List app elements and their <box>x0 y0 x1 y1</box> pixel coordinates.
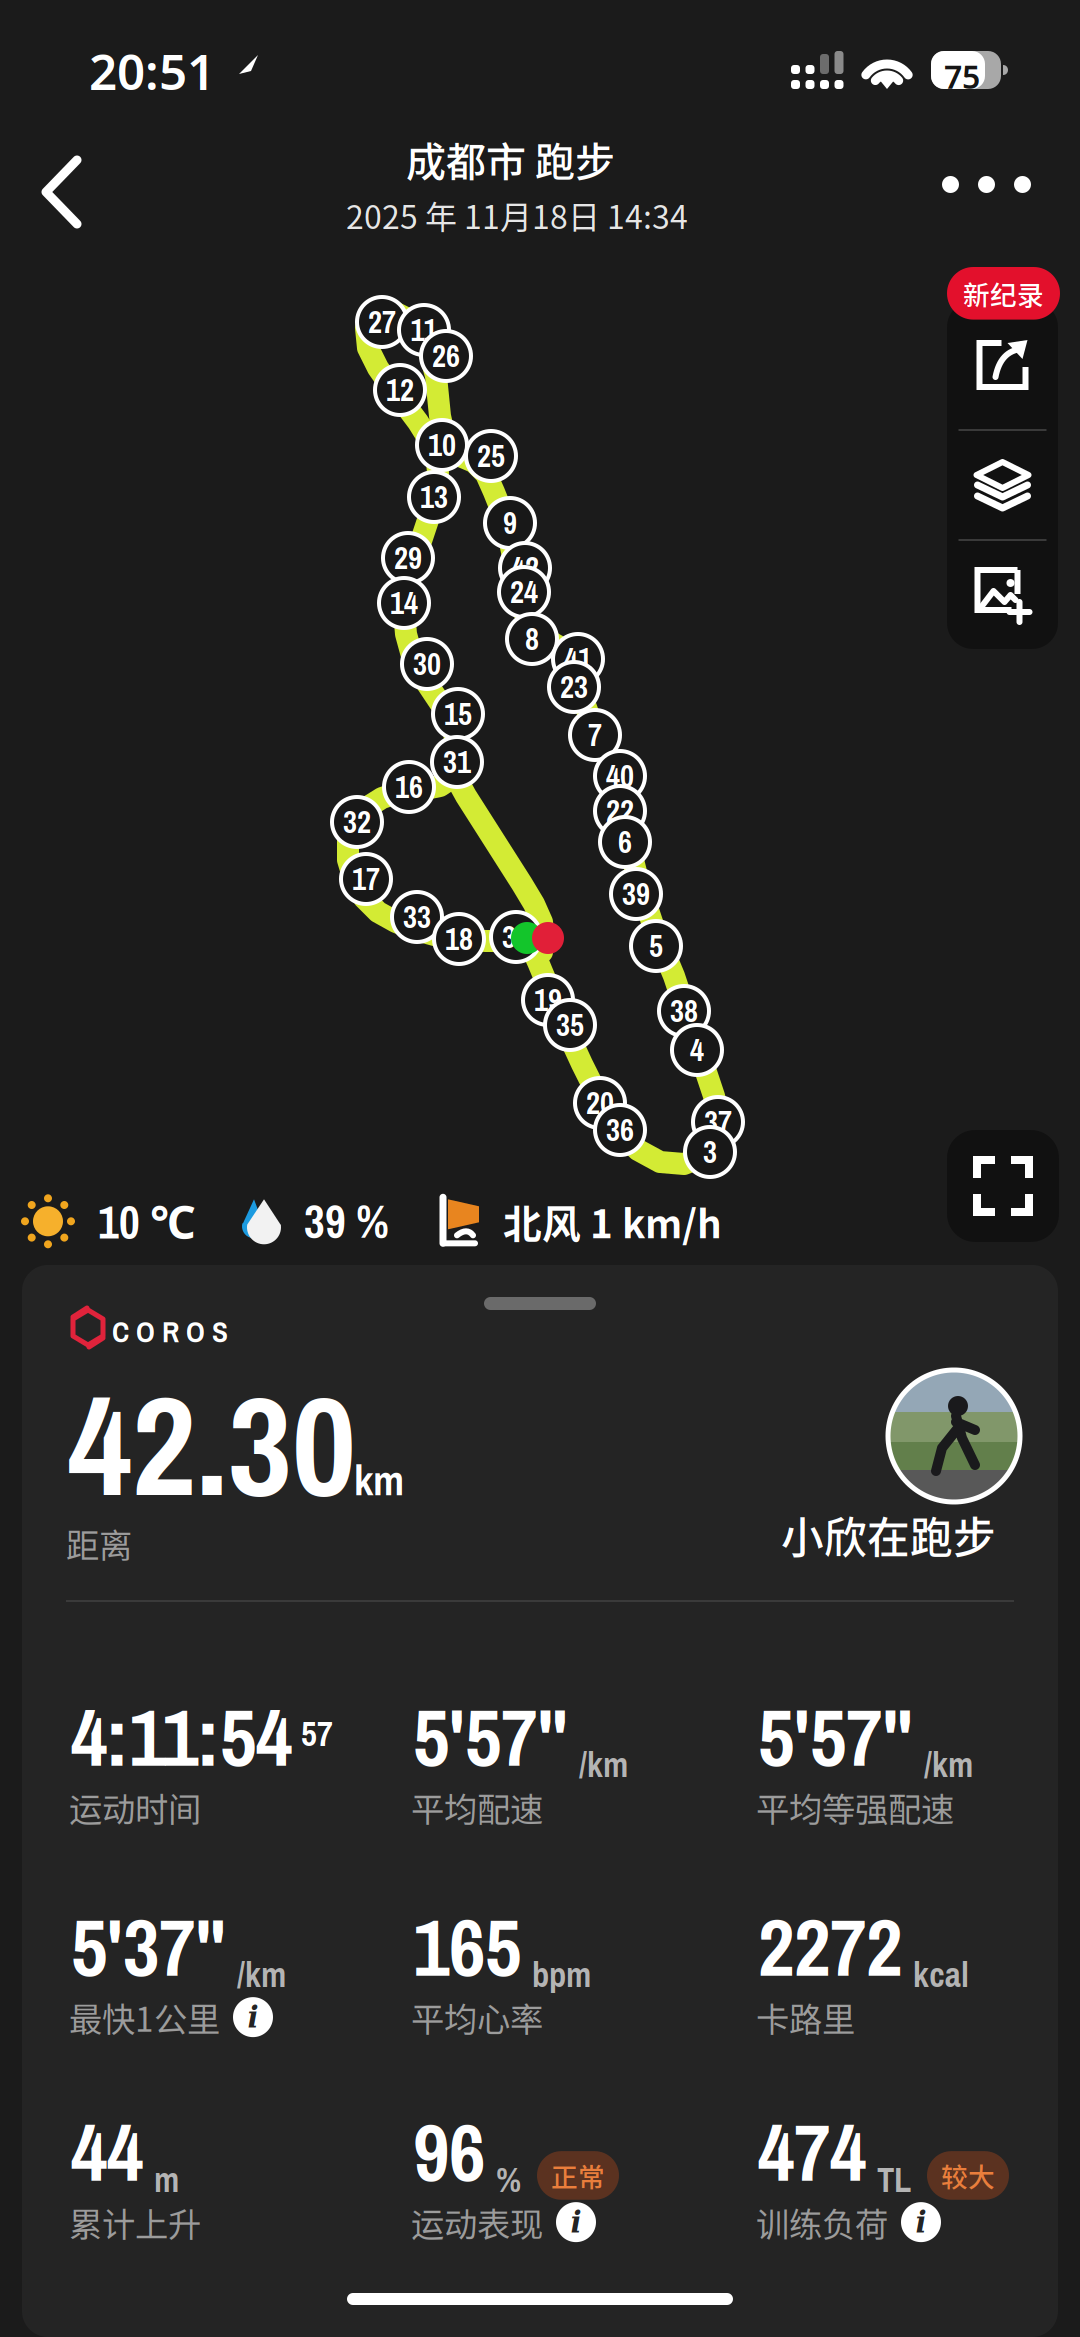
staticText: i <box>915 2205 926 2239</box>
staticText: 成都市 跑步 <box>406 130 615 188</box>
staticText: 训练负荷 <box>756 2198 888 2246</box>
staticText: 4:11:54 <box>71 1683 292 1791</box>
staticText: 7 <box>588 714 602 756</box>
staticText: i <box>570 2205 581 2239</box>
staticText: 35 <box>556 1004 584 1046</box>
staticText: 正常 <box>551 2156 605 2195</box>
staticText: 13 <box>420 476 448 518</box>
staticText: 平均心率 <box>411 1993 543 2041</box>
staticText: 17 <box>352 858 380 900</box>
staticText: km <box>354 1451 404 1508</box>
staticText: bpm <box>532 1951 591 1998</box>
staticText: 14 <box>390 582 418 624</box>
button[interactable]: Share <box>947 301 1058 429</box>
staticText: 18 <box>445 918 473 960</box>
staticText: 16 <box>395 766 423 808</box>
staticText: m <box>154 2156 179 2203</box>
staticText: 距离 <box>66 1519 132 1567</box>
staticText: 39 <box>622 873 650 915</box>
staticText: 32 <box>343 801 371 843</box>
staticText: 运动表现 <box>411 2198 543 2246</box>
staticText: TL <box>877 2156 911 2203</box>
staticText: 36 <box>606 1109 634 1151</box>
staticText: 42 <box>511 547 539 589</box>
staticText: /km <box>579 1741 628 1788</box>
staticText: 31 <box>443 741 471 783</box>
staticText: 5'37" <box>71 1893 226 2001</box>
staticText: 15 <box>444 693 472 735</box>
staticText: 卡路里 <box>756 1993 855 2041</box>
staticText: 29 <box>394 537 422 579</box>
staticText: 57 <box>301 1710 333 1757</box>
staticText: 23 <box>560 666 588 708</box>
button[interactable]: Add photo <box>947 541 1058 649</box>
staticText: 累计上升 <box>69 2198 201 2246</box>
staticText: 42.30 <box>68 1350 356 1539</box>
staticText: 27 <box>368 301 396 343</box>
staticText: 5 <box>649 925 663 967</box>
staticText: i <box>247 2000 258 2034</box>
staticText: % <box>496 2156 521 2203</box>
staticText: 11 <box>410 309 437 351</box>
staticText: 4 <box>690 1029 704 1071</box>
staticText: 10 ℃ <box>98 1190 196 1253</box>
staticText: 8 <box>525 618 539 660</box>
staticText: 41 <box>564 638 592 680</box>
staticText: /km <box>237 1951 286 1998</box>
staticText: 24 <box>510 571 538 613</box>
staticText: /km <box>924 1741 973 1788</box>
staticText: 39 % <box>304 1191 389 1252</box>
staticText: 96 <box>413 2098 485 2206</box>
staticText: 33 <box>403 896 431 938</box>
button[interactable]: Full screen map <box>947 1130 1059 1242</box>
staticText: 最快1公里 <box>69 1993 220 2041</box>
staticText: 38 <box>670 990 698 1032</box>
staticText: 6 <box>618 821 632 863</box>
staticText: 37 <box>704 1101 732 1143</box>
staticText: 75 <box>944 55 980 97</box>
staticText: 平均配速 <box>411 1783 543 1831</box>
staticText: 30 <box>413 643 441 685</box>
staticText: 20:51 <box>89 38 215 103</box>
staticText: COROS <box>112 1312 228 1351</box>
staticText: 2025 年 11月18日 14:34 <box>346 192 688 238</box>
staticText: 9 <box>503 502 517 544</box>
staticText: 40 <box>606 755 634 797</box>
staticText: 10 <box>428 424 456 466</box>
staticText: 12 <box>386 369 414 411</box>
button[interactable]: Map layers <box>947 431 1058 539</box>
staticText: kcal <box>913 1951 969 1998</box>
staticText: 5'57" <box>413 1683 568 1791</box>
staticText: 平均等强配速 <box>756 1783 954 1831</box>
staticText: 5'57" <box>758 1683 913 1791</box>
staticText: 34 <box>502 916 530 958</box>
button[interactable]: More options <box>908 126 1065 243</box>
staticText: 较大 <box>941 2156 995 2195</box>
staticText: 22 <box>606 790 634 832</box>
staticText: 26 <box>432 335 460 377</box>
staticText: 19 <box>534 979 562 1021</box>
staticText: 运动时间 <box>69 1783 201 1831</box>
staticText: 小欣在跑步 <box>781 1504 996 1566</box>
staticText: 25 <box>477 435 505 477</box>
staticText: 新纪录 <box>963 274 1044 313</box>
staticText: 北风 1 km/h <box>503 1193 722 1249</box>
staticText: 474 <box>758 2098 866 2206</box>
staticText: 165 <box>413 1893 521 2001</box>
staticText: 3 <box>703 1131 717 1173</box>
staticText: 44 <box>71 2098 143 2206</box>
button[interactable]: Back <box>2 124 122 260</box>
staticText: 2272 <box>758 1893 902 2001</box>
staticText: 20 <box>586 1082 614 1124</box>
